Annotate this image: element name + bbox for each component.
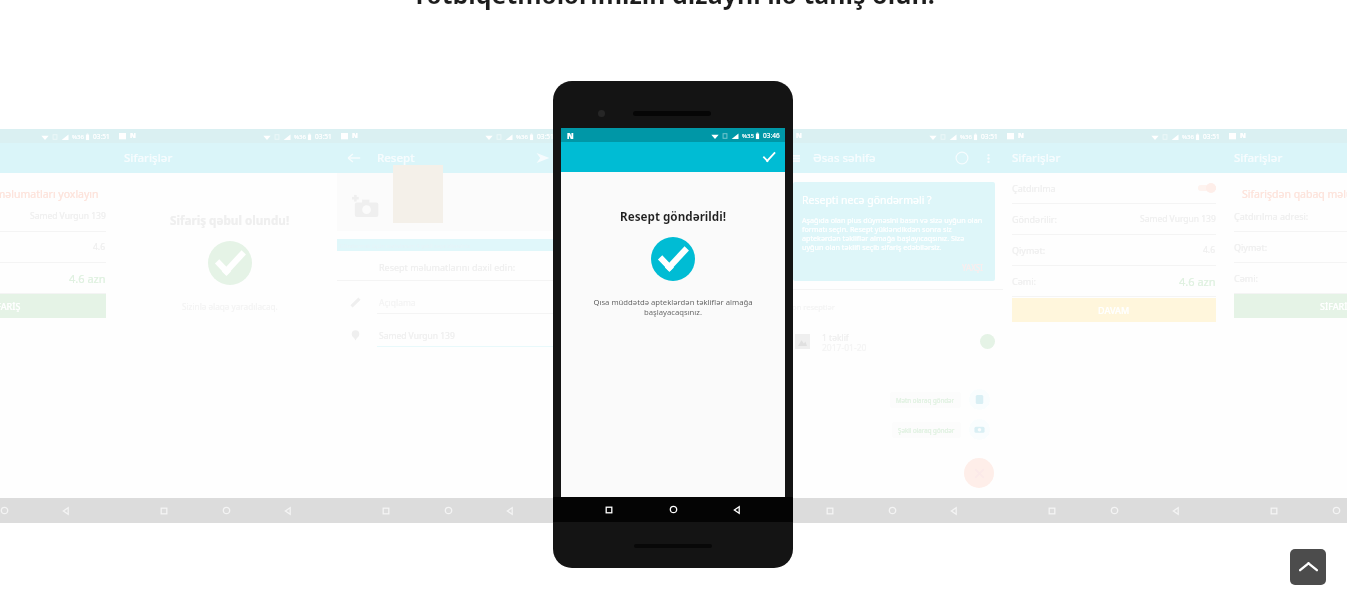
staticText: N <box>1240 131 1246 141</box>
button[interactable]: Back <box>727 506 737 516</box>
staticText: Çatdırılma adresi: <box>1234 210 1309 222</box>
staticText: %36 <box>294 133 306 141</box>
staticText: Sifarişdən qabaq məlumatları yoxlayın <box>1242 187 1347 201</box>
button[interactable]: Home <box>443 505 454 516</box>
staticText: Çatdırılma <box>1012 182 1056 194</box>
button[interactable]: Recent apps <box>604 505 614 515</box>
button[interactable]: More options <box>982 152 995 165</box>
staticText: N <box>352 131 358 141</box>
staticText: 1 təklif <box>822 332 849 344</box>
button[interactable]: Back <box>347 151 361 165</box>
staticText: Samed Vurgun 139 <box>379 330 455 342</box>
staticText: Resept <box>377 150 415 166</box>
staticText: Əsas səhifə <box>813 150 876 166</box>
staticText: Sifarişlər <box>1012 150 1061 166</box>
staticText: Son reseptlər <box>788 302 835 312</box>
button[interactable]: Home <box>1109 505 1120 516</box>
staticText: Sifarişlər <box>124 150 173 166</box>
button[interactable]: DAVAM <box>1012 298 1216 322</box>
button[interactable]: Recent apps <box>825 506 835 516</box>
staticText: 4.6 <box>1203 244 1216 256</box>
staticText: N <box>130 131 136 141</box>
button[interactable]: Delivery toggle <box>1194 183 1216 193</box>
button[interactable]: Scroll to top <box>1290 549 1326 585</box>
staticText: Cəmi: <box>1234 272 1258 284</box>
staticText: 4.6 azn <box>69 271 106 286</box>
button[interactable]: Recent apps <box>381 506 391 516</box>
staticText: N <box>567 130 574 141</box>
staticText: Tətbiqetmələrimizin dizaynı ilə tanış ol… <box>0 0 1347 11</box>
button[interactable]: Send as text <box>969 389 990 410</box>
staticText: Qiymət: <box>1012 244 1046 256</box>
staticText: 03:51 <box>759 132 776 141</box>
staticText: %36 <box>738 133 750 141</box>
staticText: Cəmi: <box>1012 275 1036 287</box>
button[interactable]: Back <box>505 506 515 516</box>
staticText: Mətn olaraq göndər <box>896 396 955 404</box>
button[interactable]: Recent apps <box>603 506 613 516</box>
staticText: SİFARİŞ <box>1320 300 1347 312</box>
button[interactable]: Home <box>668 504 679 515</box>
staticText: %36 <box>960 133 972 141</box>
button[interactable]: Home <box>887 505 898 516</box>
staticText: Resepti necə göndərməli ? <box>802 193 932 207</box>
staticText: 4.6 azn <box>1179 274 1216 289</box>
staticText: YAXŞI <box>962 262 983 273</box>
staticText: 03:51 <box>1203 132 1220 141</box>
staticText: Resept göndərildi! <box>620 208 727 224</box>
button[interactable]: Send <box>536 151 550 165</box>
button[interactable]: Recent apps <box>159 506 169 516</box>
button[interactable]: Confirm <box>758 146 780 168</box>
button[interactable]: Home <box>0 505 10 516</box>
staticText: Samed Vurgun 139 <box>30 210 106 222</box>
button[interactable]: Home <box>1331 505 1342 516</box>
button[interactable]: Back <box>61 506 71 516</box>
button[interactable]: SİFARİŞ <box>1234 294 1347 318</box>
staticText: Sifarişdən qabaq məlumatları yoxlayın <box>0 187 99 201</box>
staticText: Aşağıda olan plus düyməsini basın və siz… <box>802 215 987 252</box>
button[interactable]: Back <box>732 505 742 515</box>
staticText: 03:51 <box>981 132 998 141</box>
button[interactable]: Recent apps <box>1047 506 1057 516</box>
staticText: 4.6 <box>93 241 106 253</box>
staticText: SİFARİŞ <box>0 300 21 312</box>
button[interactable]: Send as photo <box>969 419 990 440</box>
staticText: Qısa müddətdə apteklərdən təkliflər alma… <box>593 297 753 317</box>
staticText: N <box>1018 131 1024 141</box>
button[interactable]: Home <box>221 505 232 516</box>
staticText: Göndərilir: <box>1012 213 1057 225</box>
staticText: 03:51 <box>315 132 332 141</box>
staticText: Şəkil olaraq göndər <box>898 426 955 434</box>
staticText: 03:46 <box>763 131 780 140</box>
button[interactable]: Help <box>955 151 969 165</box>
staticText: Resept məlumatlarını daxil edin: <box>379 261 516 273</box>
staticText: 2017-01-20 <box>822 342 867 354</box>
staticText: 03:51 <box>93 132 110 141</box>
staticText: Sifarişlər <box>1234 150 1283 166</box>
staticText: 03:51 <box>537 132 554 141</box>
button[interactable]: YAXŞI <box>962 262 983 273</box>
button[interactable]: SİFARİŞ <box>0 294 106 318</box>
button[interactable]: Back <box>1171 506 1181 516</box>
staticText: Açıqlama <box>379 297 416 309</box>
button[interactable]: Menu <box>788 152 801 165</box>
button[interactable]: Close <box>964 458 994 488</box>
staticText: Sizinlə əlaqə yaradılacaq. <box>182 301 278 312</box>
button[interactable]: Back <box>949 506 959 516</box>
staticText: %36 <box>72 133 84 141</box>
button[interactable]: Back <box>283 506 293 516</box>
staticText: %35 <box>742 132 754 140</box>
staticText: %36 <box>1182 133 1194 141</box>
staticText: Qiymət: <box>1234 241 1268 253</box>
staticText: DAVAM <box>1098 304 1130 316</box>
button[interactable]: Home <box>665 505 676 516</box>
staticText: Sifariş qəbul olundu! <box>170 212 290 228</box>
staticText: %36 <box>516 133 528 141</box>
button[interactable]: Recent apps <box>1269 506 1279 516</box>
staticText: N <box>796 131 802 141</box>
staticText: Samed Vurgun 139 <box>1140 213 1216 225</box>
